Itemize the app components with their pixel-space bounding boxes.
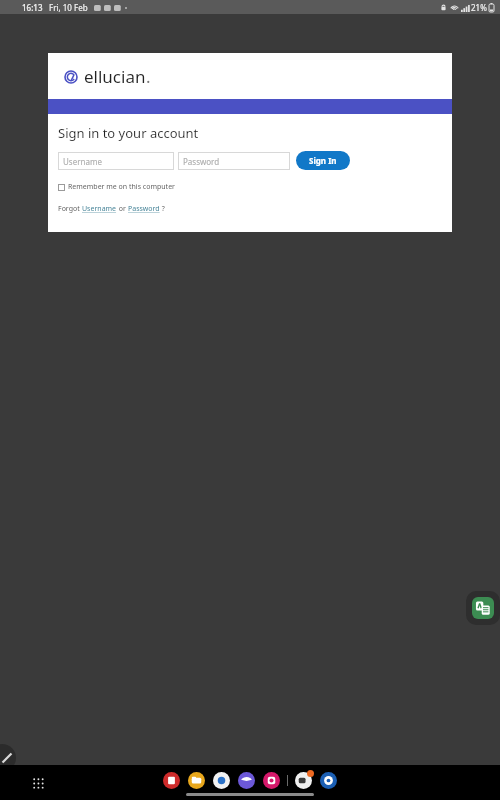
- button[interactable]: Username: [58, 152, 174, 170]
- staticText: ?: [160, 204, 165, 214]
- button[interactable]: Internet: [238, 772, 255, 789]
- staticText: Forgot: [58, 204, 82, 214]
- staticText: Sign In: [309, 155, 337, 166]
- staticText: Username: [63, 156, 102, 167]
- button[interactable]: Settings: [320, 772, 337, 789]
- button[interactable]: Pen tools: [0, 744, 16, 772]
- staticText: Fri, 10 Feb: [49, 2, 88, 13]
- button[interactable]: Messages: [163, 772, 180, 789]
- button[interactable]: Translate: [466, 591, 500, 625]
- button[interactable]: Username: [82, 204, 117, 214]
- staticText: 16:13: [22, 2, 43, 13]
- staticText: Sign in to your account: [58, 124, 199, 142]
- staticText: or: [117, 204, 128, 214]
- staticText: 21%: [471, 2, 487, 13]
- button[interactable]: Password: [128, 204, 160, 214]
- button[interactable]: Apps: [29, 774, 47, 792]
- button[interactable]: Instagram: [263, 772, 280, 789]
- button[interactable]: Phone: [213, 772, 230, 789]
- staticText: Remember me on this computer: [68, 182, 175, 192]
- button[interactable]: Recent app: [295, 772, 312, 789]
- button[interactable]: Password: [178, 152, 290, 170]
- button[interactable]: Remember me on this computer: [58, 182, 175, 192]
- staticText: .: [146, 65, 151, 88]
- staticText: Password: [183, 156, 220, 167]
- staticText: ellucian: [84, 65, 146, 88]
- button[interactable]: Sign In: [296, 151, 350, 170]
- button[interactable]: Files: [188, 772, 205, 789]
